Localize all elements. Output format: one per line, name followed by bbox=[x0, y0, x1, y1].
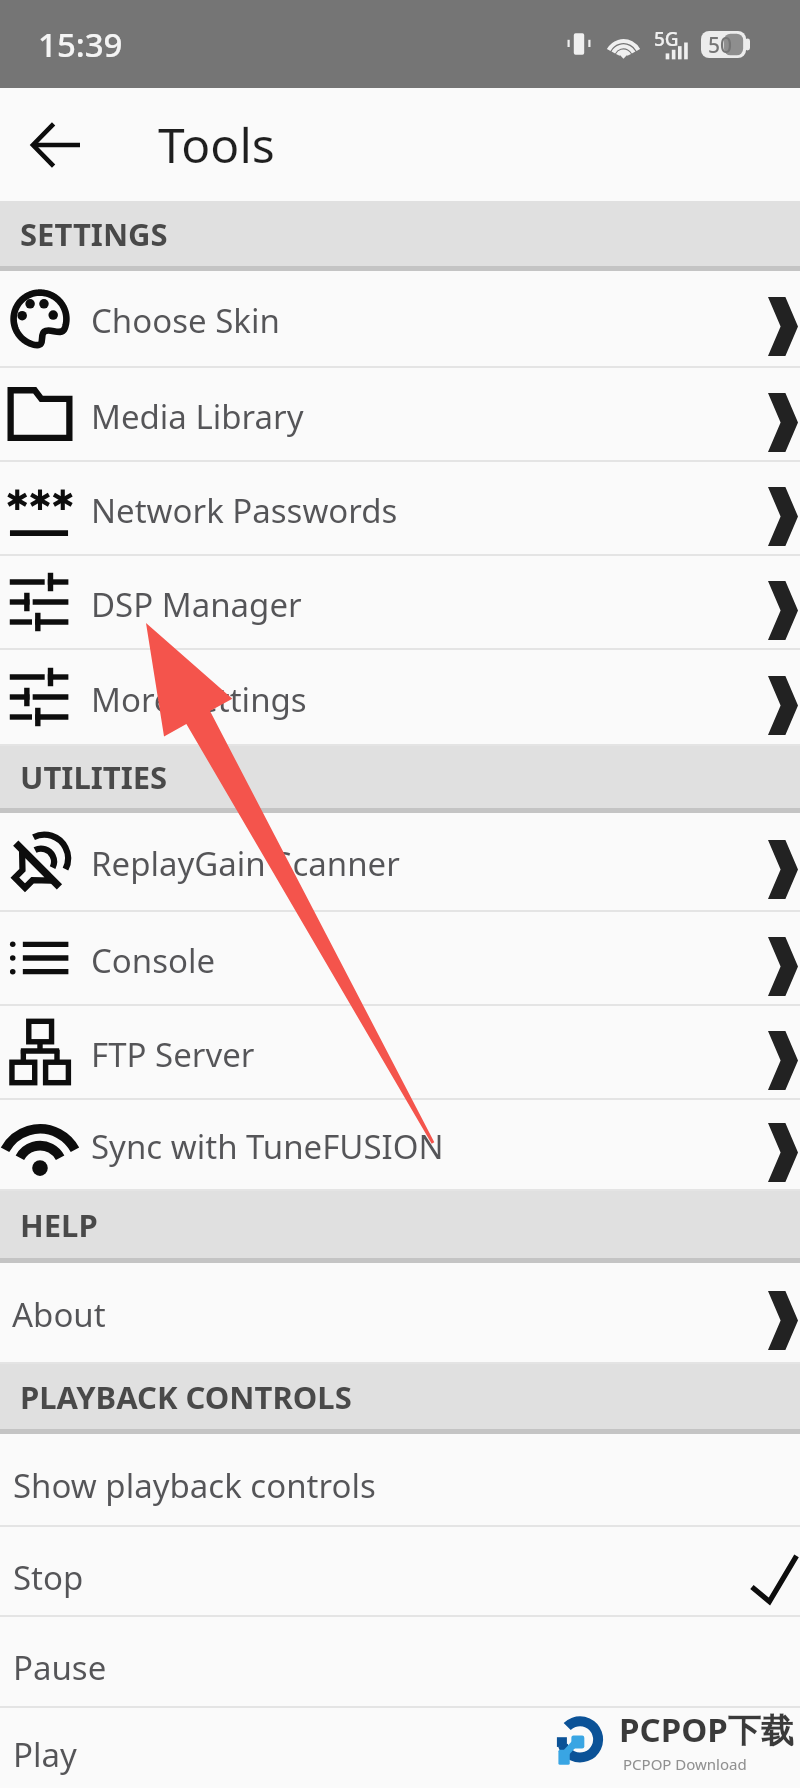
staticText: Play bbox=[13, 1732, 77, 1777]
button[interactable]: Console bbox=[0, 912, 800, 1004]
staticText: Choose Skin bbox=[91, 298, 280, 343]
staticText: Console bbox=[91, 938, 216, 983]
staticText: 5G bbox=[654, 26, 679, 52]
staticText: PCPOP下载 bbox=[619, 1707, 794, 1752]
staticText: HELP bbox=[20, 1204, 98, 1246]
button[interactable]: Network Passwords bbox=[0, 462, 800, 554]
staticText: DSP Manager bbox=[91, 582, 302, 627]
staticText: Tools bbox=[158, 112, 275, 177]
button[interactable]: FTP Server bbox=[0, 1006, 800, 1098]
staticText: Media Library bbox=[91, 394, 304, 439]
button[interactable]: DSP Manager bbox=[0, 556, 800, 648]
button[interactable]: Pause bbox=[0, 1617, 800, 1706]
button[interactable]: More Settings bbox=[0, 650, 800, 744]
staticText: UTILITIES bbox=[20, 756, 168, 798]
staticText: Sync with TuneFUSION bbox=[91, 1124, 444, 1169]
button[interactable]: Stop bbox=[0, 1527, 800, 1615]
button[interactable]: ReplayGain Scanner bbox=[0, 813, 800, 910]
staticText: Show playback controls bbox=[13, 1463, 376, 1508]
staticText: PLAYBACK CONTROLS bbox=[20, 1376, 352, 1418]
button[interactable]: Sync with TuneFUSION bbox=[0, 1100, 800, 1189]
staticText: ReplayGain Scanner bbox=[91, 841, 400, 886]
staticText: Pause bbox=[13, 1645, 107, 1690]
button[interactable]: Back bbox=[0, 88, 112, 201]
staticText: About bbox=[12, 1292, 106, 1337]
button[interactable]: About bbox=[0, 1263, 800, 1362]
staticText: SETTINGS bbox=[20, 213, 168, 255]
button[interactable]: Choose Skin bbox=[0, 271, 800, 366]
staticText: 15:39 bbox=[38, 22, 123, 67]
staticText: 50 bbox=[708, 31, 733, 58]
staticText: PCPOP Download bbox=[623, 1754, 747, 1774]
staticText: Stop bbox=[13, 1555, 84, 1600]
button[interactable]: Play bbox=[0, 1708, 800, 1788]
staticText: More Settings bbox=[91, 677, 307, 722]
staticText: FTP Server bbox=[91, 1032, 255, 1077]
button[interactable]: Show playback controls bbox=[0, 1434, 800, 1525]
button[interactable]: Media Library bbox=[0, 368, 800, 460]
staticText: Network Passwords bbox=[91, 488, 398, 533]
